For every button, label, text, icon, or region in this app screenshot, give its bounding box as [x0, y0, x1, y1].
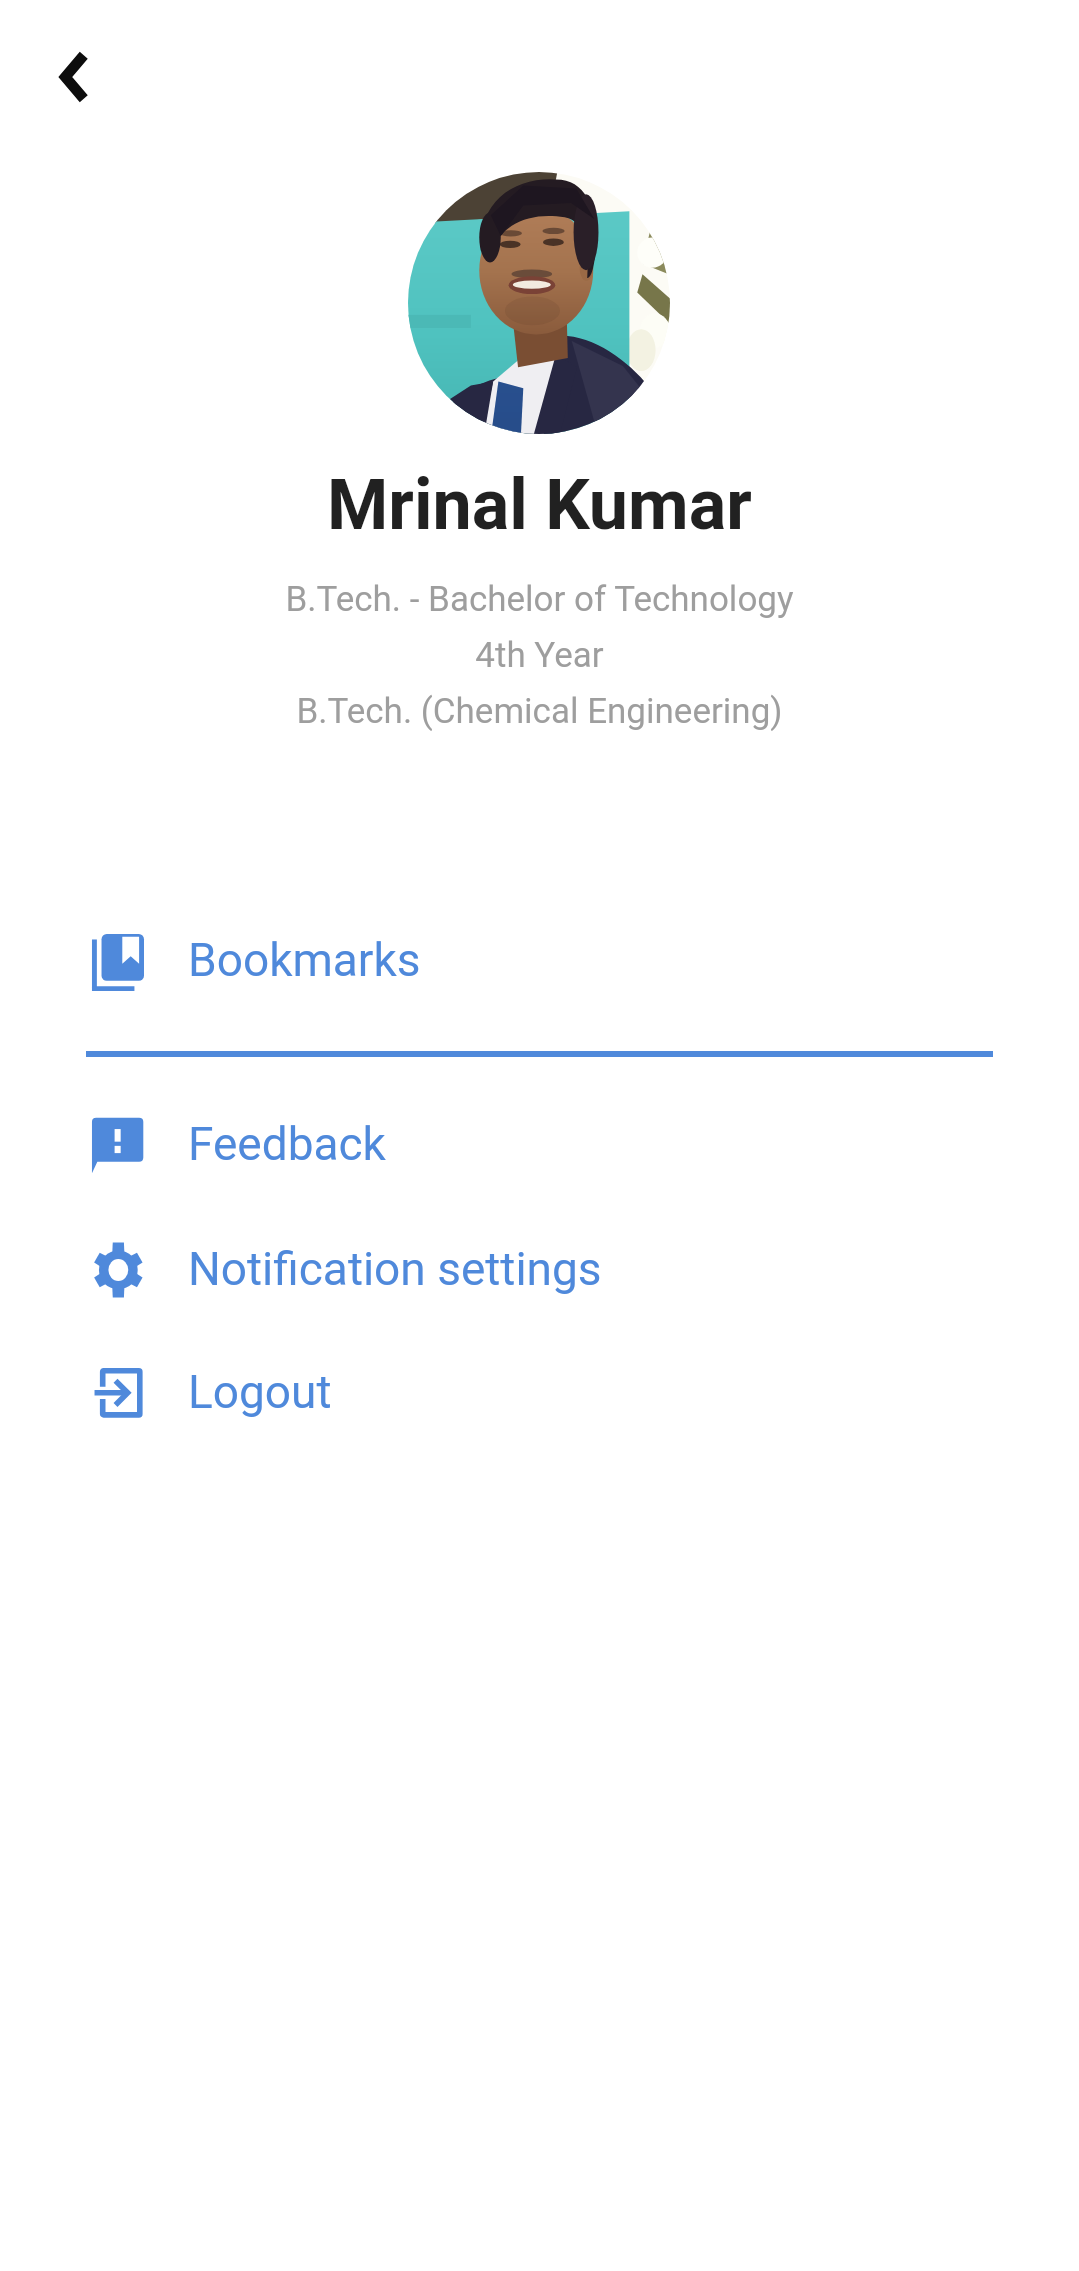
- button[interactable]: Logout: [0, 1358, 1079, 1426]
- staticText: Bookmarks: [188, 933, 421, 987]
- staticText: Notification settings: [188, 1242, 602, 1296]
- staticText: B.Tech. - Bachelor of Technology 4th Yea…: [285, 579, 794, 732]
- button[interactable]: Back: [26, 29, 122, 125]
- button[interactable]: Notification settings: [0, 1235, 1079, 1303]
- button[interactable]: Bookmarks: [0, 926, 1079, 994]
- staticText: Logout: [188, 1365, 332, 1419]
- staticText: Mrinal Kumar: [327, 464, 752, 546]
- staticText: Feedback: [188, 1117, 386, 1171]
- button[interactable]: Feedback: [0, 1110, 1079, 1178]
